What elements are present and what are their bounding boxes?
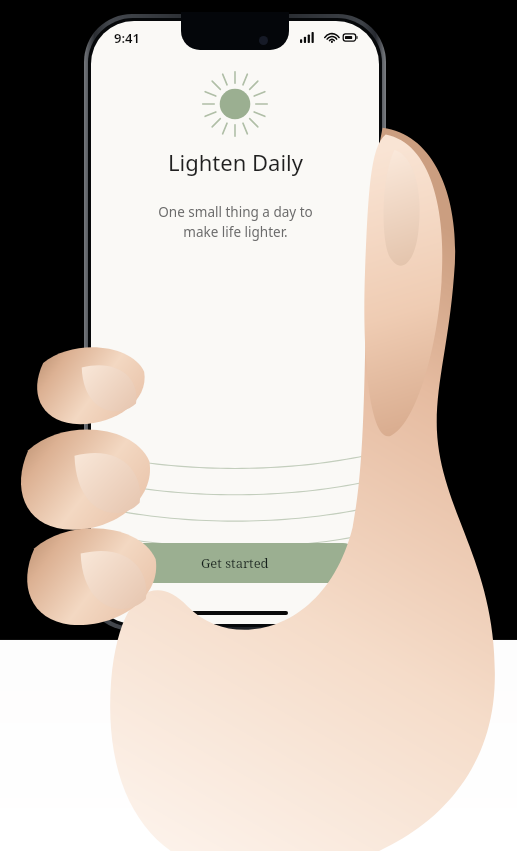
staticText: Lighten Daily [168,147,303,177]
button[interactable]: Get started [113,543,357,583]
staticText: Get started [201,554,269,572]
other: Sun logo [201,70,269,138]
staticText: One small thing a day to make life light… [158,203,313,241]
staticText: 9:41 [114,29,140,47]
